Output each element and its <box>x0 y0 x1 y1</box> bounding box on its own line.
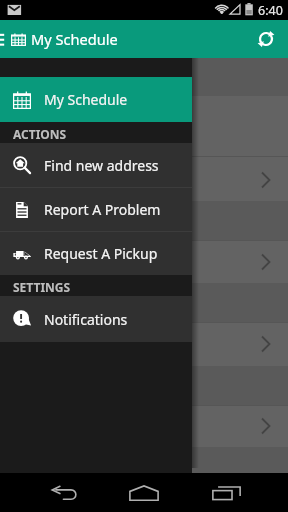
button[interactable]: Refresh <box>248 20 284 58</box>
button[interactable]: Open navigation drawer <box>0 20 4 58</box>
button[interactable]: Recents <box>196 473 256 512</box>
staticText: SETTINGS <box>13 279 71 295</box>
button[interactable]: Report A Problem <box>0 188 192 231</box>
button[interactable]: Find new address <box>0 143 192 187</box>
staticText: ACTIONS <box>13 126 67 142</box>
button[interactable]: Notifications <box>0 296 192 342</box>
staticText: Notifications <box>44 310 128 329</box>
button[interactable]: Request A Pickup <box>0 232 192 275</box>
button[interactable]: Home <box>114 473 174 512</box>
staticText: My Schedule <box>44 90 128 109</box>
staticText: Find new address <box>44 156 159 175</box>
staticText: My Schedule <box>31 29 118 49</box>
staticText: Report A Problem <box>44 200 161 219</box>
button[interactable]: My Schedule <box>0 77 192 122</box>
button[interactable]: Back <box>34 473 94 512</box>
staticText: Request A Pickup <box>44 244 158 263</box>
staticText: 6:40 <box>258 2 283 19</box>
